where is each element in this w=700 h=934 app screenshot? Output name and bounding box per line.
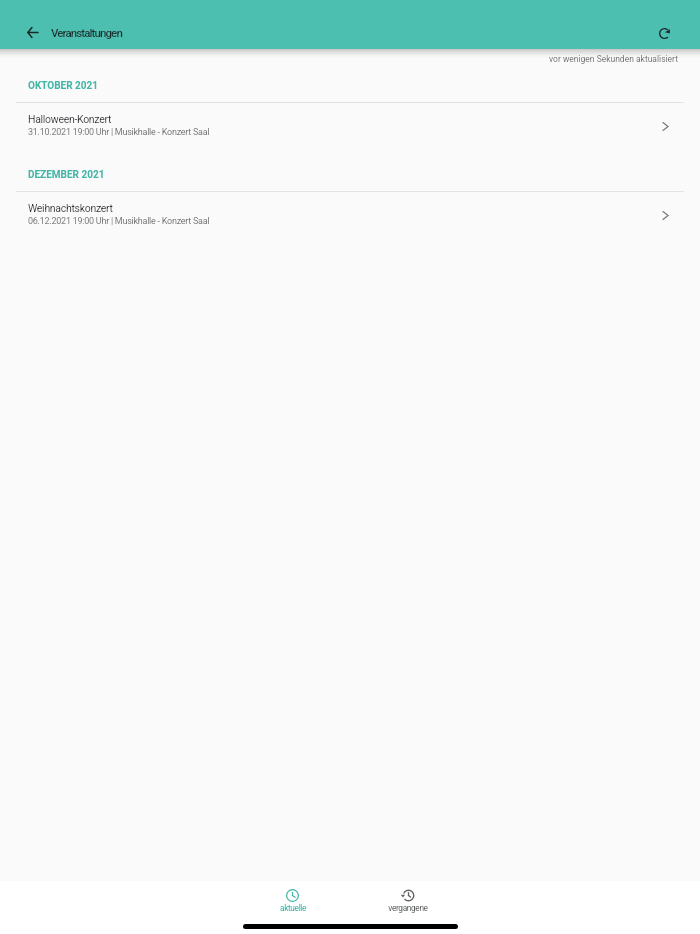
staticText: 06.12.2021 19:00 Uhr | Musikhalle - Konz… xyxy=(28,216,210,227)
button[interactable]: Weihnachtskonzert xyxy=(0,202,700,227)
button[interactable]: aktuelle xyxy=(235,889,350,920)
staticText: DEZEMBER 2021 xyxy=(28,169,105,181)
staticText: aktuelle xyxy=(280,903,306,913)
staticText: Halloween-Konzert xyxy=(28,113,112,125)
staticText: Veranstaltungen xyxy=(51,26,122,39)
button[interactable]: Back xyxy=(16,16,48,48)
other: Details xyxy=(656,117,674,135)
button[interactable]: Refresh xyxy=(648,17,680,49)
other: Details xyxy=(656,206,674,224)
button[interactable]: vergangene xyxy=(350,889,465,920)
staticText: vor wenigen Sekunden aktualisiert xyxy=(549,54,678,64)
staticText: OKTOBER 2021 xyxy=(28,80,99,92)
staticText: vergangene xyxy=(388,903,428,913)
button[interactable]: Halloween-Konzert xyxy=(0,113,700,138)
staticText: Weihnachtskonzert xyxy=(28,202,113,214)
staticText: 31.10.2021 19:00 Uhr | Musikhalle - Konz… xyxy=(28,127,210,138)
